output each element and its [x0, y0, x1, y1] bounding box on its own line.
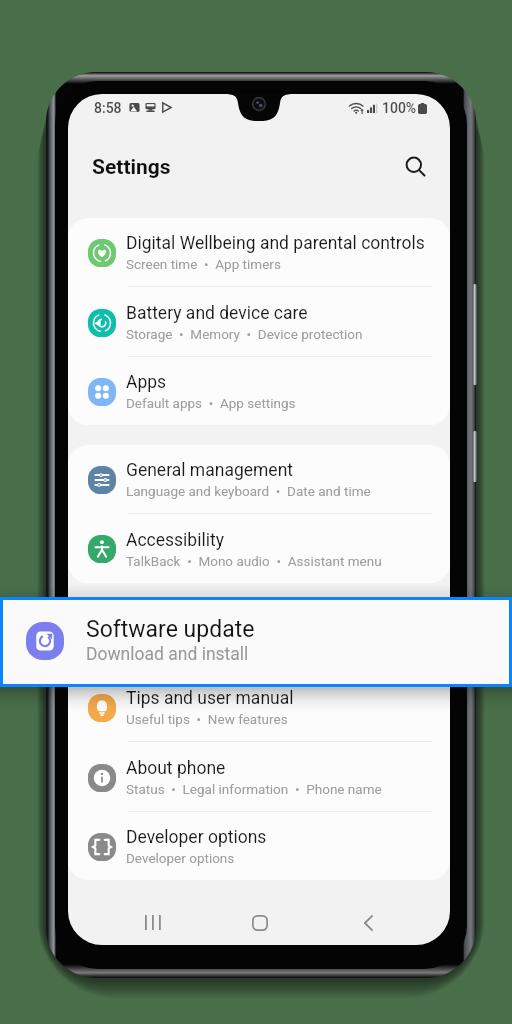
- button[interactable]: Home: [237, 900, 283, 945]
- staticText: Developer options: [126, 827, 267, 848]
- staticText: Screen time • App timers: [126, 256, 281, 272]
- button[interactable]: Digital Wellbeing and parental controls: [68, 218, 450, 287]
- staticText: 100%: [382, 100, 417, 116]
- staticText: Digital Wellbeing and parental controls: [126, 233, 425, 254]
- staticText: Status • Legal information • Phone name: [126, 781, 382, 797]
- staticText: Tips and user manual: [126, 688, 294, 709]
- staticText: Software update: [86, 616, 255, 643]
- button[interactable]: Search: [398, 149, 434, 185]
- staticText: Language and keyboard • Date and time: [126, 483, 371, 499]
- staticText: Accessibility: [126, 530, 224, 551]
- button[interactable]: Back: [345, 900, 391, 945]
- button[interactable]: General management: [68, 445, 450, 514]
- button[interactable]: Recent apps: [130, 900, 176, 945]
- staticText: Download and install: [86, 644, 249, 665]
- staticText: Storage • Memory • Device protection: [126, 326, 363, 342]
- staticText: 8:58: [94, 100, 122, 116]
- staticText: Developer options: [126, 850, 235, 866]
- staticText: About phone: [126, 758, 226, 779]
- staticText: Settings: [92, 155, 171, 180]
- button[interactable]: About phone: [68, 743, 450, 812]
- button[interactable]: Tips and user manual: [68, 673, 450, 742]
- staticText: General management: [126, 460, 294, 481]
- button[interactable]: Developer options: [68, 813, 450, 880]
- staticText: TalkBack • Mono audio • Assistant menu: [126, 553, 382, 569]
- staticText: Battery and device care: [126, 303, 308, 324]
- button[interactable]: Software update: [3, 600, 509, 684]
- button[interactable]: Apps: [68, 358, 450, 425]
- staticText: Default apps • App settings: [126, 395, 296, 411]
- button[interactable]: Battery and device care: [68, 288, 450, 357]
- button[interactable]: Accessibility: [68, 515, 450, 583]
- staticText: Apps: [126, 372, 167, 393]
- staticText: Useful tips • New features: [126, 711, 288, 727]
